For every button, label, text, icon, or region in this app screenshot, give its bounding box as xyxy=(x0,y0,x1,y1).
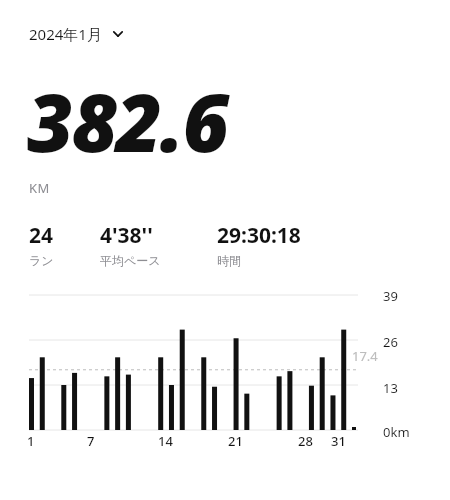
staticText: 4'38'' xyxy=(100,221,153,250)
staticText: KM xyxy=(29,179,50,197)
staticText: 26 xyxy=(383,333,398,351)
button[interactable]: 29:30:18 xyxy=(217,221,301,268)
button[interactable]: 24 xyxy=(29,221,54,268)
staticText: 時間 xyxy=(217,253,241,268)
staticText: 28 xyxy=(298,432,313,450)
staticText: 31 xyxy=(331,432,346,450)
staticText: 21 xyxy=(228,432,243,450)
staticText: 7 xyxy=(87,432,95,450)
staticText: 29:30:18 xyxy=(217,221,301,250)
button[interactable]: Monthly distance bar chart xyxy=(0,285,450,485)
button[interactable]: 4'38'' xyxy=(100,221,161,268)
button[interactable]: 2024年1月 xyxy=(29,22,131,46)
staticText: 2024年1月 xyxy=(29,24,102,44)
staticText: 17.4 xyxy=(352,347,378,365)
staticText: ラン xyxy=(29,253,54,268)
staticText: 13 xyxy=(383,379,398,397)
staticText: 382.6 xyxy=(27,66,228,175)
staticText: 24 xyxy=(29,221,54,250)
staticText: 39 xyxy=(383,287,398,305)
staticText: 0km xyxy=(383,423,410,441)
staticText: 14 xyxy=(158,432,173,450)
staticText: 平均ペース xyxy=(100,253,161,268)
staticText: 1 xyxy=(27,432,35,450)
